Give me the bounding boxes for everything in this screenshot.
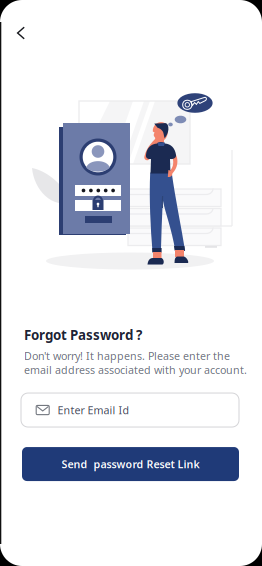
staticText: Forgot Password ? [24,326,142,344]
button[interactable]: Send password Reset Link [22,447,239,481]
staticText: Don't worry! It happens. Please enter th… [24,349,247,377]
staticText: Enter Email Id [57,403,129,417]
staticText: Send password Reset Link [61,457,199,471]
button[interactable]: Back [0,0,40,52]
